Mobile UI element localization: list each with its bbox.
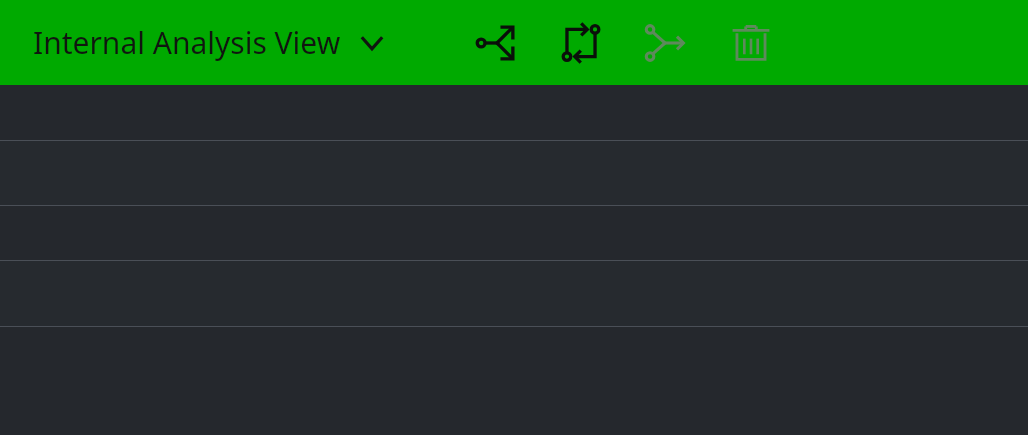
button[interactable]: Delete	[727, 19, 775, 67]
button[interactable]: Split	[473, 19, 521, 67]
staticText: Internal Analysis View	[33, 22, 341, 63]
button[interactable]: Swap	[557, 19, 605, 67]
button[interactable]: Merge	[641, 19, 689, 67]
button[interactable]: Internal Analysis View	[33, 22, 395, 63]
